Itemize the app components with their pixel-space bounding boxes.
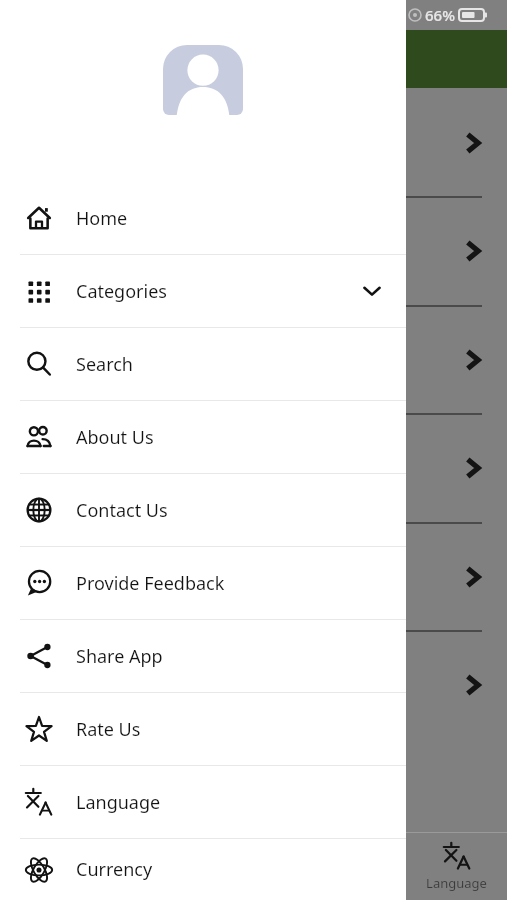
button[interactable]: Provide Feedback xyxy=(0,547,406,619)
staticText: About Us xyxy=(76,425,154,450)
staticText: Contact Us xyxy=(76,498,168,523)
staticText: Currency xyxy=(76,857,153,882)
staticText: 66% xyxy=(425,5,455,25)
button[interactable]: Language xyxy=(0,766,406,838)
staticText: Share App xyxy=(76,644,163,669)
button[interactable]: About Us xyxy=(0,401,406,473)
staticText: Home xyxy=(76,206,128,231)
staticText: Categories xyxy=(76,279,167,304)
button[interactable]: Open item xyxy=(460,672,486,698)
button[interactable]: Open item xyxy=(460,455,486,481)
button[interactable]: Contact Us xyxy=(0,474,406,546)
button[interactable]: Profile photo xyxy=(163,45,243,115)
staticText: Search xyxy=(76,352,133,377)
button[interactable]: Open item xyxy=(460,347,486,373)
button[interactable]: Home xyxy=(0,182,406,254)
button[interactable]: Open item xyxy=(460,130,486,156)
button[interactable]: Language xyxy=(406,832,507,900)
button[interactable]: Search xyxy=(0,328,406,400)
button[interactable]: Currency xyxy=(0,839,406,900)
staticText: Provide Feedback xyxy=(76,571,225,596)
staticText: Rate Us xyxy=(76,717,141,742)
button[interactable]: Share App xyxy=(0,620,406,692)
button[interactable]: Open item xyxy=(460,238,486,264)
button[interactable]: Categories xyxy=(0,255,406,327)
staticText: Language xyxy=(426,874,487,892)
staticText: Language xyxy=(76,790,161,815)
button[interactable]: Rate Us xyxy=(0,693,406,765)
button[interactable]: Open item xyxy=(460,564,486,590)
